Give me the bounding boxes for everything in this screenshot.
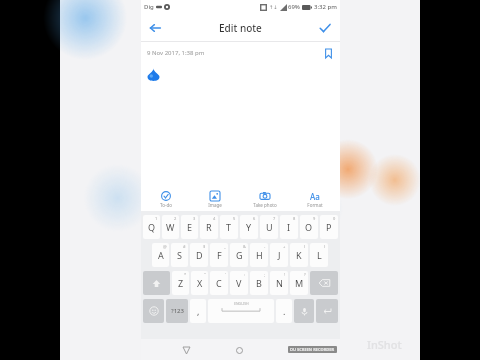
staticText: DU SCREEN RECORDER: [290, 347, 335, 352]
staticText: Y: [246, 221, 252, 233]
staticText: ↑↓: [269, 4, 278, 10]
button[interactable]: G: [230, 243, 248, 267]
staticText: ?123: [171, 307, 184, 315]
staticText: 6: [253, 216, 256, 221]
button[interactable]: Symbols: [166, 299, 188, 323]
button[interactable]: To-do: [141, 188, 190, 208]
button[interactable]: Aa: [290, 188, 340, 208]
staticText: 3: [193, 216, 196, 221]
staticText: Image: [208, 202, 222, 208]
staticText: U: [266, 221, 273, 233]
staticText: K: [296, 249, 302, 261]
staticText: ): [324, 244, 326, 249]
staticText: 8: [293, 216, 296, 221]
staticText: Z: [178, 277, 184, 289]
button[interactable]: T: [220, 215, 238, 239]
staticText: #: [183, 244, 186, 249]
button[interactable]: M: [290, 271, 308, 295]
button[interactable]: O: [300, 215, 318, 239]
button[interactable]: E: [181, 215, 198, 239]
button[interactable]: V: [230, 271, 248, 295]
staticText: $: [203, 244, 206, 249]
staticText: X: [197, 277, 203, 289]
button[interactable]: W: [162, 215, 179, 239]
button[interactable]: Save note: [315, 18, 335, 38]
staticText: R: [206, 221, 212, 233]
staticText: !: [284, 272, 286, 277]
button[interactable]: B: [250, 271, 268, 295]
staticText: 2: [174, 216, 177, 221]
staticText: @: [163, 244, 167, 249]
button[interactable]: N: [270, 271, 288, 295]
staticText: S: [177, 249, 182, 261]
staticText: ': [225, 272, 226, 277]
button[interactable]: I: [280, 215, 298, 239]
button[interactable]: Take photo: [240, 188, 290, 208]
button[interactable]: J: [270, 243, 288, 267]
button[interactable]: C: [210, 271, 228, 295]
button[interactable]: Backspace: [310, 271, 338, 295]
staticText: +: [283, 244, 286, 249]
button[interactable]: X: [191, 271, 208, 295]
button[interactable]: Back: [145, 18, 165, 38]
button[interactable]: L: [310, 243, 328, 267]
staticText: L: [317, 249, 322, 261]
staticText: Edit note: [219, 21, 262, 35]
staticText: Dig: [144, 3, 154, 11]
staticText: G: [236, 249, 243, 261]
staticText: 3:32 pm: [314, 3, 337, 11]
staticText: _: [224, 244, 226, 249]
button[interactable]: Enter: [316, 299, 338, 323]
button[interactable]: Space: [208, 299, 274, 323]
button[interactable]: Emoji: [143, 299, 164, 323]
button[interactable]: R: [200, 215, 218, 239]
staticText: E: [187, 221, 193, 233]
staticText: -: [264, 244, 266, 249]
staticText: Aa: [310, 191, 320, 201]
button[interactable]: A: [152, 243, 169, 267]
staticText: (: [304, 244, 306, 249]
button[interactable]: ,: [190, 299, 206, 323]
button[interactable]: Z: [172, 271, 189, 295]
staticText: To-do: [160, 202, 172, 208]
staticText: ENGLISH: [234, 301, 249, 306]
button[interactable]: Image: [190, 188, 240, 208]
staticText: F: [217, 249, 222, 261]
staticText: Format: [307, 202, 323, 208]
button[interactable]: P: [320, 215, 338, 239]
button[interactable]: S: [171, 243, 188, 267]
staticText: M: [295, 277, 304, 289]
button[interactable]: Y: [240, 215, 258, 239]
button[interactable]: Q: [143, 215, 160, 239]
staticText: 1: [155, 216, 158, 221]
staticText: J: [278, 249, 281, 261]
button[interactable]: K: [290, 243, 308, 267]
button[interactable]: Back: [178, 342, 194, 358]
staticText: &: [243, 244, 246, 249]
staticText: V: [236, 277, 242, 289]
button[interactable]: F: [210, 243, 228, 267]
staticText: 9: [313, 216, 316, 221]
staticText: C: [216, 277, 222, 289]
staticText: *: [184, 272, 187, 277]
button[interactable]: Shift: [143, 271, 170, 295]
staticText: 9 Nov 2017, 1:38 pm: [147, 49, 205, 57]
staticText: 7: [273, 216, 276, 221]
staticText: P: [326, 221, 332, 233]
staticText: ,: [197, 305, 200, 317]
button[interactable]: Bookmark: [321, 46, 335, 60]
button[interactable]: H: [250, 243, 268, 267]
staticText: A: [158, 249, 164, 261]
staticText: I: [287, 221, 291, 233]
staticText: 4: [213, 216, 216, 221]
staticText: O: [305, 221, 313, 233]
button[interactable]: D: [190, 243, 208, 267]
button[interactable]: U: [260, 215, 278, 239]
button[interactable]: Voice input: [294, 299, 314, 323]
staticText: .: [283, 305, 286, 317]
staticText: ?: [304, 272, 306, 277]
staticText: N: [276, 277, 283, 289]
button[interactable]: Home: [231, 342, 247, 358]
button[interactable]: .: [276, 299, 292, 323]
staticText: :: [244, 272, 246, 277]
